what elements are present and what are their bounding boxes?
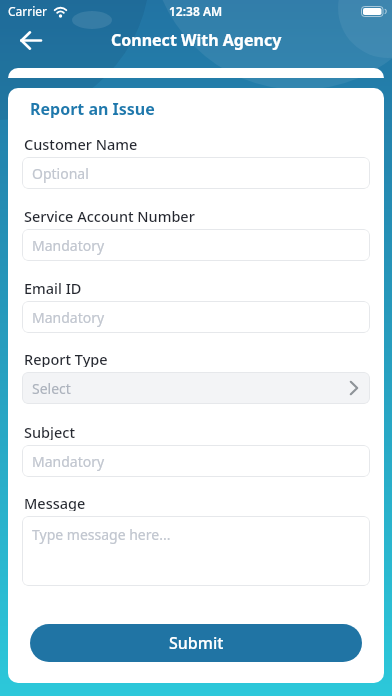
button[interactable]: Mandatory [22, 301, 370, 333]
button[interactable] [12, 22, 50, 58]
staticText: Mandatory [32, 308, 105, 327]
staticText: 12:38 AM [169, 3, 223, 19]
staticText: Type message here... [32, 525, 171, 544]
staticText: Optional [32, 164, 89, 183]
staticText: Connect With Agency [111, 29, 282, 51]
button[interactable]: Optional [22, 157, 370, 189]
button[interactable]: Submit [30, 624, 362, 662]
staticText: Report an Issue [30, 98, 155, 118]
staticText: Report Type [24, 349, 108, 367]
button[interactable]: Mandatory [22, 229, 370, 261]
staticText: Submit [169, 632, 224, 654]
staticText: Select [32, 379, 71, 398]
button[interactable]: Type message here... [22, 516, 370, 586]
staticText: Service Account Number [24, 206, 195, 224]
staticText: Subject [24, 422, 75, 440]
staticText: Email ID [24, 278, 82, 296]
staticText: Mandatory [32, 236, 105, 255]
staticText: Customer Name [24, 134, 138, 152]
button[interactable]: Mandatory [22, 445, 370, 477]
staticText: Carrier [8, 3, 48, 19]
button[interactable]: Select [22, 372, 370, 404]
staticText: Mandatory [32, 452, 105, 471]
staticText: Message [24, 493, 86, 511]
